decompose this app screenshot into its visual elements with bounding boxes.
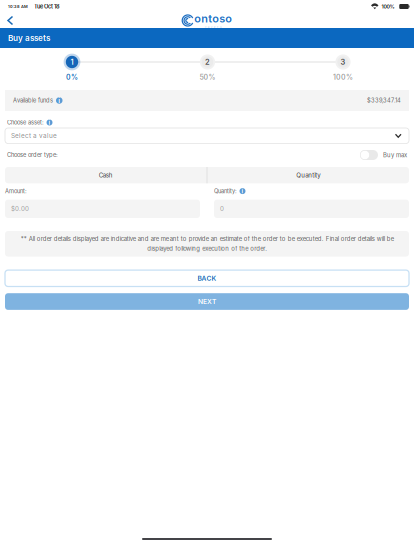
staticText: Choose asset: [7, 119, 44, 126]
staticText: Quantity: [214, 188, 237, 194]
button[interactable]: Buy max [360, 150, 407, 160]
staticText: 10:38 AM [8, 4, 28, 9]
button[interactable]: Back [3, 13, 17, 27]
staticText: 100% [333, 73, 353, 81]
staticText: BACK [197, 274, 216, 282]
staticText: ontoso [194, 12, 232, 25]
staticText: NEXT [198, 297, 216, 306]
staticText: $339,347.14 [367, 97, 401, 104]
staticText: $0.00 [11, 205, 29, 212]
staticText: C R Y P T O [205, 26, 222, 29]
staticText: Tue Oct 18 [34, 3, 60, 10]
staticText: ** All order details displayed are indic… [20, 235, 393, 252]
staticText: Amount: [5, 188, 27, 194]
staticText: 0 [220, 205, 224, 212]
button[interactable]: Quantity [207, 167, 409, 183]
staticText: 1 [70, 57, 73, 66]
staticText: 0% [66, 73, 78, 81]
staticText: Choose order type: [7, 151, 58, 158]
staticText: i [58, 96, 60, 105]
staticText: 3 [340, 57, 345, 66]
staticText: 2 [205, 57, 210, 66]
staticText: i [48, 119, 50, 126]
staticText: 100% [381, 3, 394, 10]
button[interactable]: NEXT [5, 293, 409, 310]
staticText: 50% [199, 73, 215, 81]
staticText: Available funds [13, 97, 53, 104]
button[interactable]: Cash [5, 167, 207, 183]
button[interactable]: BACK [5, 270, 409, 286]
staticText: Cash [99, 171, 113, 179]
staticText: i [241, 187, 243, 195]
staticText: Quantity [296, 171, 320, 179]
staticText: Buy assets [8, 33, 50, 43]
staticText: Select a value [11, 132, 57, 140]
button[interactable]: Select a value [5, 128, 409, 143]
staticText: Buy max [383, 151, 407, 159]
